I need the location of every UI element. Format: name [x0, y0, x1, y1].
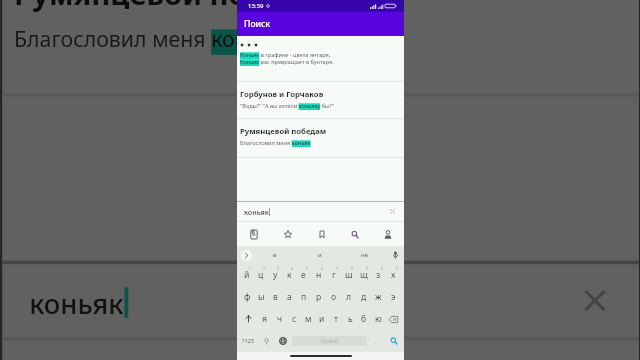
button[interactable]: 8: [341, 264, 356, 286]
button[interactable]: б: [357, 308, 371, 330]
staticText: и: [318, 251, 322, 259]
button[interactable]: 2: [254, 264, 268, 286]
button[interactable]: э: [386, 286, 401, 308]
staticText: ц: [258, 269, 264, 281]
button[interactable]: 3: [268, 264, 282, 286]
staticText: коньяк: [244, 207, 269, 217]
button[interactable]: а: [282, 286, 296, 308]
staticText: в: [273, 251, 277, 259]
button[interactable]: Bookmarks: [305, 222, 338, 246]
button[interactable]: я: [257, 308, 272, 330]
button[interactable]: 0: [371, 264, 386, 286]
button[interactable]: 11: [386, 264, 401, 286]
button[interactable]: Profile: [371, 222, 404, 246]
button[interactable]: ь: [343, 308, 357, 330]
button[interactable]: Shift: [240, 308, 257, 330]
staticText: "Воды?" "А вы хотели коньяку бы?": [240, 103, 334, 110]
button[interactable]: Voice input: [387, 246, 404, 264]
button[interactable]: Favourites: [271, 222, 305, 246]
button[interactable]: Румянцевой победам: [237, 119, 404, 157]
staticText: Горбунов и Горчаков: [240, 89, 324, 99]
staticText: д: [361, 291, 367, 303]
button[interactable]: 6: [311, 264, 326, 286]
button[interactable]: Поиск: [237, 12, 404, 36]
staticText: ш: [345, 269, 353, 281]
button[interactable]: Search: [387, 341, 513, 360]
staticText: Коньяк в графине - цвета янтаря, Коньяк …: [240, 52, 334, 66]
button[interactable]: Горбунов и Горчаков: [237, 82, 404, 118]
button[interactable]: 9: [356, 264, 371, 286]
staticText: ы: [258, 291, 265, 303]
button[interactable]: Search: [383, 330, 404, 352]
button[interactable]: в: [252, 246, 297, 264]
staticText: коньяк: [29, 283, 124, 322]
button[interactable]: ю: [371, 308, 385, 330]
staticText: Благословил меня коньяк: [240, 140, 311, 147]
button[interactable]: с: [287, 308, 301, 330]
button[interactable]: л: [341, 286, 356, 308]
button[interactable]: д: [356, 286, 371, 308]
button[interactable]: Search: [338, 222, 371, 246]
staticText: п: [301, 291, 307, 303]
staticText: р: [316, 291, 322, 303]
staticText: э: [391, 291, 396, 303]
staticText: 15:59: [248, 2, 264, 10]
button[interactable]: ?123: [237, 330, 259, 352]
staticText: я: [262, 313, 267, 325]
button[interactable]: Румянцевой победам: [2, 0, 639, 93]
button[interactable]: ы: [254, 286, 268, 308]
button[interactable]: 7: [326, 264, 341, 286]
staticText: Румянцевой победам: [240, 126, 327, 136]
staticText: т: [334, 313, 338, 325]
button[interactable]: о: [326, 286, 341, 308]
button[interactable]: ч: [272, 308, 287, 330]
staticText: щ: [360, 269, 368, 281]
staticText: 6: [321, 267, 323, 271]
staticText: Русский: [321, 338, 338, 344]
button[interactable]: Saved documents: [237, 222, 271, 246]
button[interactable]: Clear text: [574, 280, 616, 322]
button[interactable]: ф: [240, 286, 254, 308]
staticText: 7: [336, 267, 338, 271]
button[interactable]: ж: [371, 286, 386, 308]
staticText: с: [292, 313, 297, 325]
button[interactable]: Emoji: [259, 330, 274, 352]
staticText: у: [273, 269, 278, 281]
staticText: н: [316, 269, 322, 281]
button[interactable]: р: [311, 286, 326, 308]
staticText: е: [301, 269, 306, 281]
staticText: не: [361, 251, 368, 259]
button[interactable]: Backspace: [385, 308, 401, 330]
staticText: з: [376, 269, 381, 281]
button[interactable]: Change keyboard language: [274, 330, 291, 352]
button[interactable]: Clear text: [387, 206, 398, 217]
button[interactable]: Коньяк в графине - цвета янтаря, Коньяк …: [237, 36, 404, 81]
staticText: х: [391, 269, 396, 281]
button[interactable]: Favourites: [132, 341, 261, 360]
button[interactable]: 4: [282, 264, 296, 286]
button[interactable]: 5: [296, 264, 311, 286]
button[interactable]: Русский: [292, 336, 367, 346]
button[interactable]: не: [342, 246, 387, 264]
button[interactable]: и: [315, 308, 329, 330]
button[interactable]: п: [296, 286, 311, 308]
button[interactable]: коньяк: [2, 264, 639, 337]
button[interactable]: т: [329, 308, 343, 330]
button[interactable]: Expand suggestions: [241, 250, 252, 261]
button[interactable]: и: [297, 246, 342, 264]
staticText: Поиск: [244, 18, 271, 30]
staticText: 0: [381, 267, 383, 271]
button[interactable]: Bookmarks: [262, 341, 387, 360]
staticText: к: [287, 269, 292, 281]
staticText: л: [346, 291, 352, 303]
button[interactable]: 1: [240, 264, 254, 286]
staticText: ч: [277, 313, 283, 325]
button[interactable]: коньяк: [237, 202, 404, 221]
staticText: Благословил меня коньяк: [14, 28, 284, 55]
button[interactable]: в: [268, 286, 282, 308]
button[interactable]: м: [301, 308, 315, 330]
staticText: б: [361, 313, 367, 325]
